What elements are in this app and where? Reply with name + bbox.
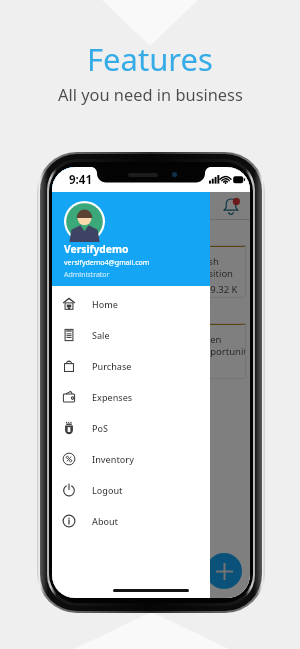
staticText: Home	[92, 298, 118, 310]
button[interactable]: Notifications	[222, 197, 240, 215]
staticText: INR 89.32 K	[186, 283, 238, 296]
staticText: All you need in business	[58, 83, 243, 105]
button[interactable]: Home	[52, 288, 210, 319]
staticText: versifydemo4@gmail.com	[64, 258, 150, 268]
staticText: Sale	[92, 329, 110, 341]
staticText: Versifydemo	[64, 242, 129, 256]
staticText: Purchase	[92, 360, 132, 372]
staticText: Expenses	[92, 391, 133, 403]
staticText: Inventory	[92, 453, 134, 465]
staticText: Administrator	[64, 270, 110, 280]
staticText: INR 0	[186, 361, 211, 374]
button[interactable]: Inventory	[52, 443, 210, 474]
button[interactable]: Logout	[52, 474, 210, 505]
button[interactable]: Sale	[52, 319, 210, 350]
staticText: About	[92, 515, 119, 527]
staticText: PoS	[92, 422, 108, 434]
button[interactable]: Add	[206, 553, 242, 589]
button[interactable]: Expenses	[52, 381, 210, 412]
button[interactable]: PoS	[52, 412, 210, 443]
button[interactable]: About	[52, 505, 210, 536]
staticText: Open Opportunities	[197, 333, 246, 358]
staticText: Cash Position	[197, 255, 233, 280]
button[interactable]: Purchase	[52, 350, 210, 381]
staticText: 2020	[62, 413, 83, 425]
staticText: 9:41	[69, 172, 92, 188]
staticText: Logout	[92, 484, 123, 496]
staticText: Features	[87, 38, 213, 80]
